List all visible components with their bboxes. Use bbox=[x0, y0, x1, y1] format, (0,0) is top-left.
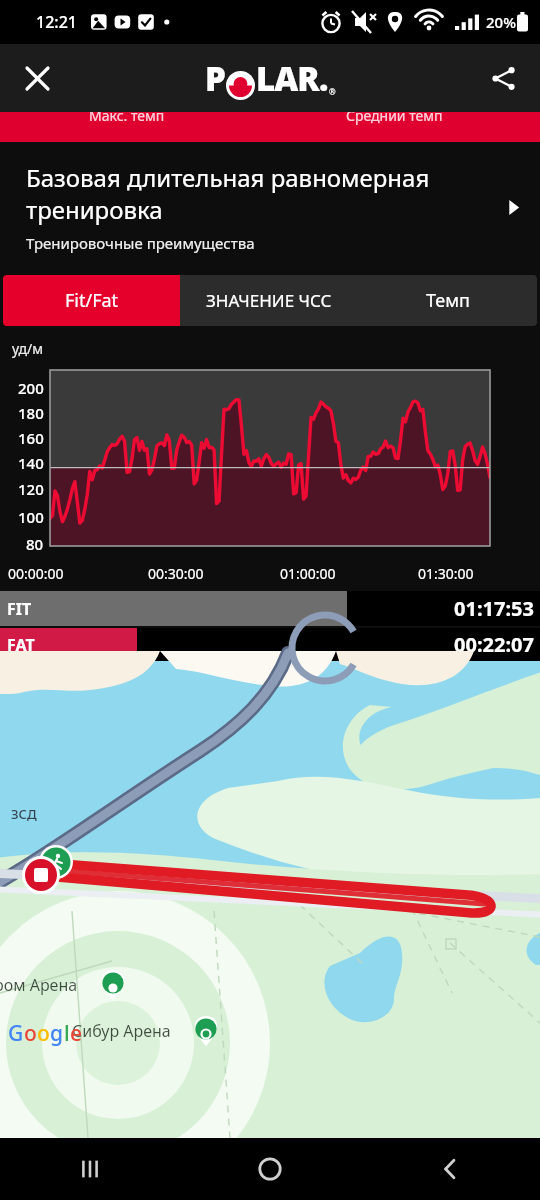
staticText: уд/м bbox=[12, 339, 43, 358]
button[interactable]: Share bbox=[480, 55, 526, 101]
staticText: 180 bbox=[18, 403, 44, 423]
staticText: ЗСД bbox=[11, 805, 37, 823]
staticText: Темп bbox=[426, 288, 470, 313]
staticText: FIT bbox=[7, 598, 32, 620]
staticText: Тренировочные преимущества bbox=[26, 233, 255, 253]
staticText: g bbox=[50, 1019, 64, 1048]
staticText: e bbox=[70, 1019, 83, 1048]
staticText: ® bbox=[329, 86, 336, 97]
staticText: 20% bbox=[486, 12, 516, 32]
staticText: 12:21 bbox=[36, 11, 77, 33]
staticText: P bbox=[205, 56, 225, 101]
staticText: LAR bbox=[256, 56, 319, 101]
button[interactable]: Back bbox=[360, 1138, 540, 1200]
staticText: Макс. темп bbox=[89, 112, 165, 125]
button[interactable]: Close bbox=[14, 55, 60, 101]
staticText: ЗНАЧЕНИЕ ЧСС bbox=[206, 289, 332, 312]
button[interactable]: ЗСД bbox=[0, 661, 540, 1138]
button[interactable]: Fit/Fat bbox=[3, 275, 180, 326]
staticText: 00:30:00 bbox=[148, 564, 204, 583]
staticText: 100 bbox=[18, 507, 44, 527]
staticText: 80 bbox=[26, 534, 44, 554]
staticText: 140 bbox=[18, 453, 44, 473]
staticText: 01:00:00 bbox=[280, 564, 336, 583]
staticText: Базовая длительная равномерная тренировк… bbox=[26, 161, 492, 226]
staticText: Fit/Fat bbox=[65, 288, 119, 313]
staticText: FAT bbox=[7, 634, 35, 656]
staticText: o bbox=[37, 1019, 50, 1048]
button[interactable]: FIT bbox=[0, 591, 540, 626]
staticText: G bbox=[8, 1019, 24, 1048]
staticText: l bbox=[64, 1019, 70, 1048]
staticText: . bbox=[319, 56, 329, 101]
staticText: 00:00:00 bbox=[8, 564, 64, 583]
button[interactable]: Базовая длительная равномерная тренировк… bbox=[0, 142, 540, 253]
button[interactable]: FAT bbox=[0, 628, 540, 661]
staticText: 00:22:07 bbox=[454, 631, 534, 658]
button[interactable]: Темп bbox=[358, 275, 537, 326]
staticText: Сибур Арена bbox=[72, 1020, 171, 1042]
staticText: 120 bbox=[18, 479, 44, 499]
staticText: 01:17:53 bbox=[454, 595, 534, 622]
button[interactable]: Recent apps bbox=[0, 1138, 180, 1200]
staticText: 200 bbox=[18, 378, 44, 398]
staticText: o bbox=[24, 1019, 37, 1048]
button[interactable]: Home bbox=[180, 1138, 360, 1200]
staticText: Средний темп bbox=[346, 112, 443, 125]
staticText: 160 bbox=[18, 428, 44, 448]
staticText: 01:30:00 bbox=[418, 564, 474, 583]
staticText: ром Арена bbox=[0, 974, 78, 996]
button[interactable]: ЗНАЧЕНИЕ ЧСС bbox=[180, 275, 358, 326]
